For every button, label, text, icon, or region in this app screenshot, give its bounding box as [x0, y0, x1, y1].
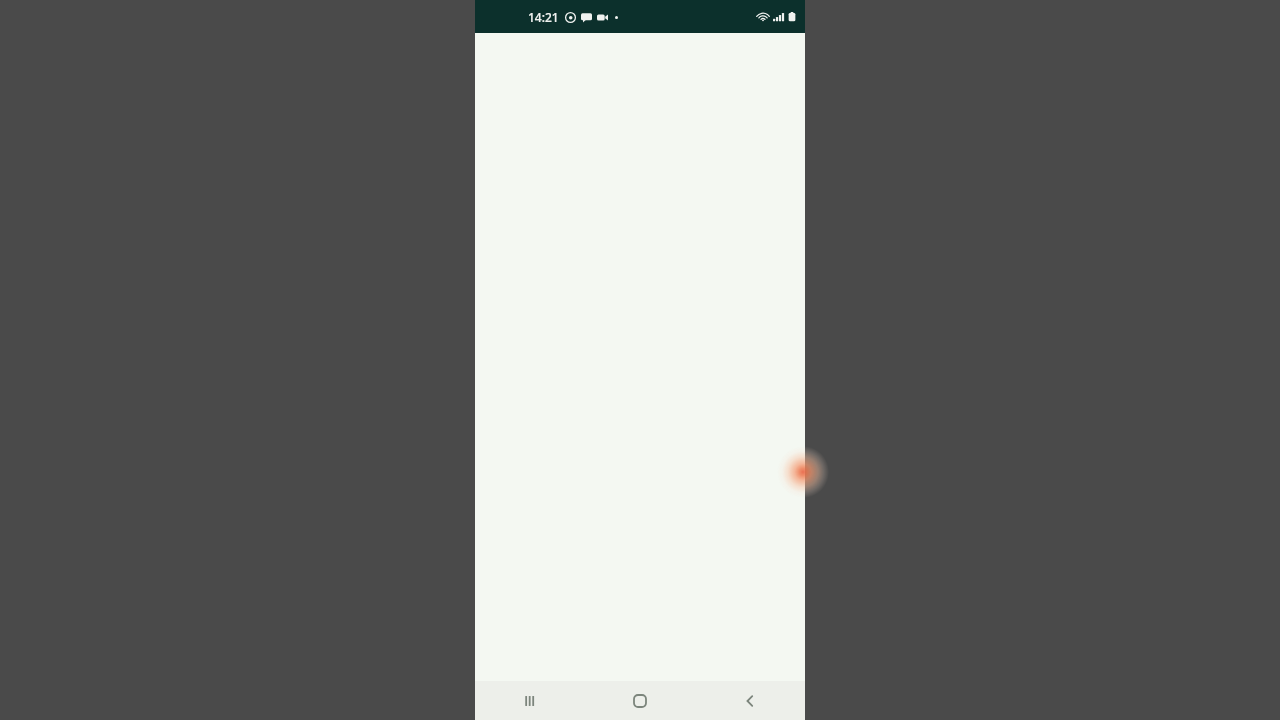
- button[interactable]: Home: [585, 681, 695, 720]
- button[interactable]: Back: [695, 681, 805, 720]
- staticText: 14:21: [528, 9, 559, 25]
- button[interactable]: Recent apps: [475, 681, 585, 720]
